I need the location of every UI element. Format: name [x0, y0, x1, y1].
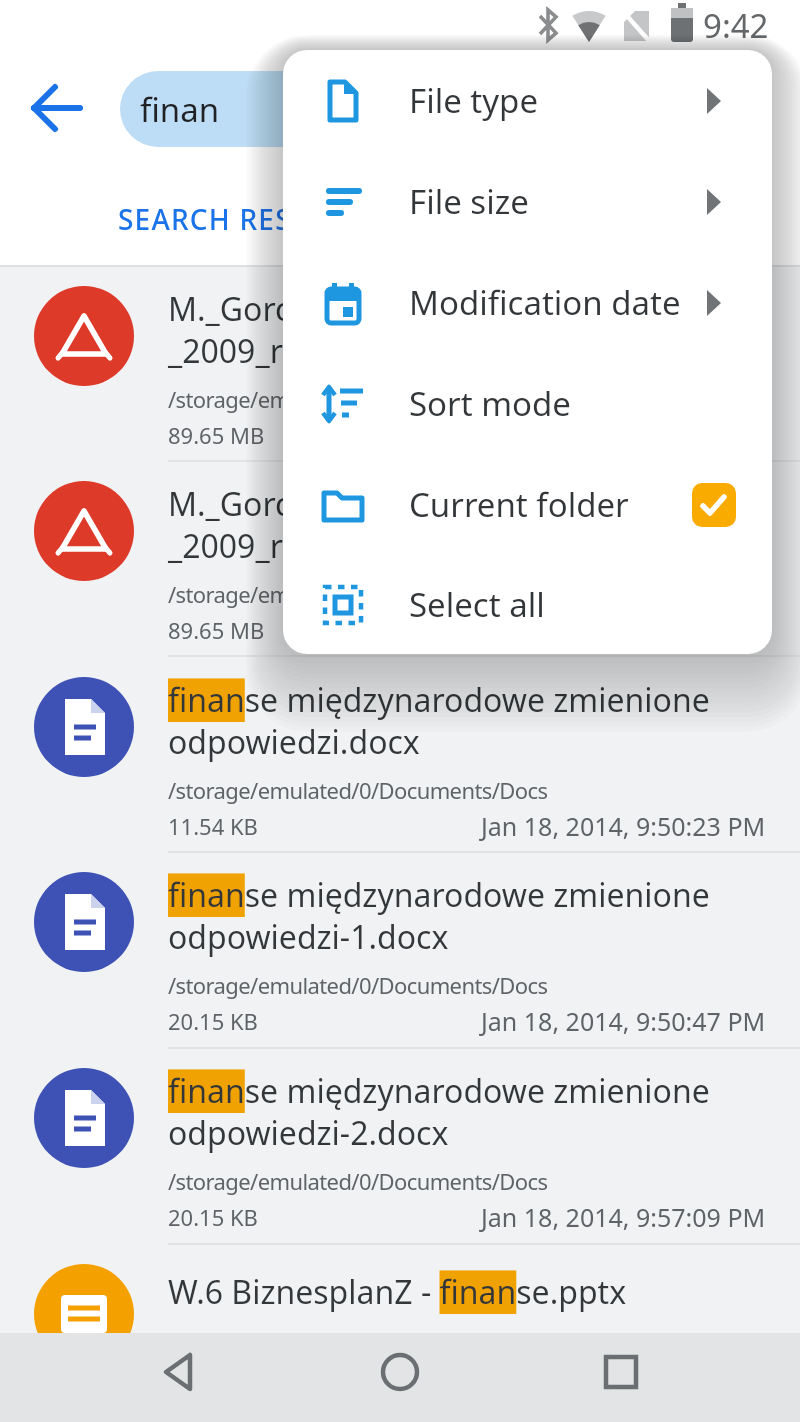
staticText: _2009_rok_skrypt.pdf [168, 329, 485, 373]
staticText: SEARCH RESULTS [118, 200, 363, 238]
button[interactable]: Modification date [283, 252, 772, 353]
button[interactable] [0, 1245, 800, 1333]
button[interactable]: File type [283, 50, 772, 151]
staticText: 89.65 MB [168, 615, 265, 645]
button[interactable] [0, 267, 800, 460]
staticText: finanse międzynarodowe zmienione [168, 678, 710, 722]
staticText: W.6 BiznesplanZ - finanse.pptx [168, 1270, 627, 1314]
button[interactable]: Select all [283, 555, 772, 654]
staticText: 20.15 KB [168, 1006, 258, 1036]
button[interactable] [580, 1340, 660, 1410]
staticText: 89.65 MB [168, 420, 265, 450]
button[interactable] [360, 1340, 440, 1410]
staticText: File type [409, 78, 692, 123]
button[interactable]: File size [283, 151, 772, 252]
staticText: 20.15 KB [168, 1202, 258, 1232]
staticText: finan [140, 87, 220, 132]
button[interactable] [120, 71, 330, 147]
staticText: /storage/emulated/0/Documents/Docs [168, 970, 548, 1000]
staticText: Sort mode [409, 381, 692, 426]
button[interactable]: Current folder [283, 454, 772, 555]
staticText: Jan 11, 2014, 9:41:07 PM [481, 613, 766, 647]
staticText: 9:42 [703, 3, 769, 48]
staticText: finanse międzynarodowe zmienione [168, 1069, 710, 1113]
staticText: Jan 18, 2014, 9:57:09 PM [481, 1200, 766, 1234]
staticText: /storage/emulated/0/Telegram [168, 384, 470, 414]
staticText: /storage/emulated/0/Documents/Docs [168, 1166, 548, 1196]
button[interactable]: Sort mode [283, 353, 772, 454]
button[interactable] [0, 461, 800, 656]
staticText: Jan 18, 2014, 9:50:23 PM [481, 809, 766, 843]
staticText: finanse międzynarodowe zmienione [168, 873, 710, 917]
staticText: odpowiedzi-1.docx [168, 915, 449, 959]
button[interactable] [0, 853, 800, 1048]
staticText: _2009_rok_skrypt-1.pdf [168, 524, 514, 568]
staticText: File size [409, 179, 692, 224]
button[interactable] [28, 80, 88, 140]
staticText: odpowiedzi.docx [168, 720, 420, 764]
staticText: M._Gorczynska_Microsoft_ [168, 482, 563, 526]
button[interactable] [0, 1049, 800, 1244]
staticText: /storage/emulated/0/Documents/Docs [168, 775, 548, 805]
button[interactable] [140, 1340, 220, 1410]
staticText: Select all [409, 582, 692, 627]
staticText: Modification date [409, 280, 692, 325]
staticText: odpowiedzi-2.docx [168, 1111, 449, 1155]
staticText: M._Gorczynska_Microsoft_ [168, 287, 563, 331]
staticText: Current folder [409, 482, 692, 527]
button[interactable] [0, 657, 800, 852]
staticText: 11.54 KB [168, 811, 258, 841]
staticText: Jan 18, 2014, 9:50:47 PM [481, 1004, 766, 1038]
staticText: /storage/emulated/0/Telegram [168, 579, 470, 609]
